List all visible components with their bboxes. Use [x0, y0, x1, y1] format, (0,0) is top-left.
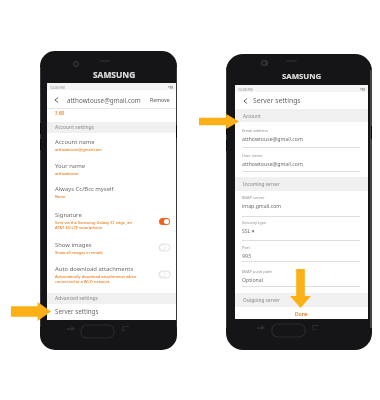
staticText: User name: [242, 153, 263, 158]
staticText: Account name: [55, 138, 95, 146]
button[interactable]: IMAP push path: [235, 269, 368, 287]
other: Back: [312, 325, 319, 330]
staticText: Optional: [242, 276, 264, 283]
button[interactable]: Always Cc/Bcc myself: [47, 184, 176, 207]
staticText: Server settings: [253, 96, 301, 105]
staticText: atthowtouse@gmail.com: [242, 135, 303, 142]
button[interactable]: Back: [237, 93, 253, 109]
staticText: atthowtouse@gmail.com: [55, 147, 102, 152]
staticText: IMAP push path: [242, 269, 272, 274]
staticText: Signature: [55, 211, 82, 219]
other: Recent apps: [257, 325, 265, 330]
staticText: Outgoing server: [243, 297, 280, 303]
staticText: IMAP server: [242, 195, 265, 200]
button[interactable]: Back: [48, 92, 64, 108]
staticText: Sent via the Samsung Galaxy S7 edge, an …: [55, 220, 132, 230]
staticText: SAMSUNG: [282, 71, 322, 82]
button[interactable]: Auto download attachments: [47, 264, 176, 291]
staticText: Remove: [150, 97, 170, 104]
staticText: 12:45 PM: [238, 87, 253, 92]
staticText: Account settings: [55, 124, 94, 131]
staticText: Incoming server: [243, 181, 280, 187]
staticText: Show all images in emails: [55, 250, 103, 255]
staticText: Show images: [55, 241, 92, 249]
staticText: Email address: [242, 128, 269, 133]
staticText: atthowtouse@gmail.com: [67, 96, 141, 105]
button[interactable]: Remove: [148, 92, 172, 108]
staticText: 3 KB: [55, 110, 65, 116]
staticText: 12:45 PM: [50, 85, 65, 90]
button[interactable]: Done: [275, 309, 328, 319]
staticText: imap.gmail.com: [242, 202, 282, 209]
staticText: Security type: [242, 220, 267, 225]
other: Back: [122, 326, 129, 331]
button[interactable]: Server settings: [47, 304, 176, 320]
button[interactable]: Signature toggle: [159, 218, 170, 225]
staticText: Your name: [55, 162, 85, 170]
staticText: Automatically download attachments when …: [55, 274, 137, 284]
other: Home: [81, 325, 114, 338]
button[interactable]: Show images: [47, 240, 176, 263]
staticText: ▾▮▮: [168, 85, 174, 89]
staticText: Auto download attachments: [55, 265, 134, 273]
staticText: SSL ▾: [242, 227, 255, 234]
button[interactable]: IMAP server: [235, 195, 368, 215]
staticText: 993: [242, 252, 251, 259]
staticText: ▾▮▮: [360, 87, 366, 91]
staticText: Account: [243, 113, 261, 119]
button[interactable]: Email address: [235, 128, 368, 147]
staticText: atthowtouse: [55, 171, 79, 176]
button[interactable]: Account name: [47, 137, 176, 160]
button[interactable]: Show images toggle: [159, 244, 170, 251]
staticText: Advanced settings: [55, 295, 98, 302]
staticText: Done: [295, 311, 308, 318]
staticText: SAMSUNG: [93, 69, 136, 80]
other: Recent apps: [67, 326, 75, 331]
staticText: Port: [242, 245, 250, 250]
button[interactable]: Your name: [47, 161, 176, 184]
staticText: atthowtouse@gmail.com: [242, 160, 303, 167]
other: Home: [272, 324, 305, 337]
staticText: Always Cc/Bcc myself: [55, 185, 114, 193]
button[interactable]: Auto download attachments toggle: [159, 271, 170, 278]
button[interactable]: Signature: [47, 210, 176, 237]
staticText: None: [55, 194, 66, 199]
button[interactable]: Security type: [235, 220, 368, 240]
button[interactable]: User name: [235, 153, 368, 171]
staticText: Server settings: [55, 307, 99, 315]
button[interactable]: Port: [235, 245, 368, 261]
